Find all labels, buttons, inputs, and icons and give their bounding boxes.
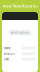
- staticText: Name: [4, 46, 11, 50]
- staticText: Amount: [4, 52, 15, 55]
- staticText: Date: [4, 57, 10, 61]
- staticText: Add New Records: [3, 3, 38, 9]
- staticText: Select option: [10, 31, 29, 34]
